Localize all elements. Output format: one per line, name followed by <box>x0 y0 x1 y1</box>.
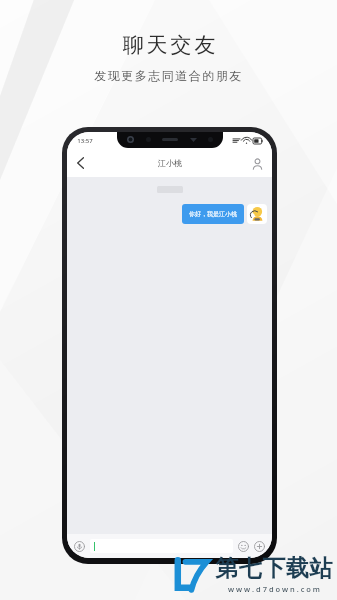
staticText: 发现更多志同道合的朋友 <box>94 68 243 83</box>
button[interactable]: Profile <box>245 151 269 175</box>
button[interactable]: More options <box>253 540 266 553</box>
button[interactable]: Avatar <box>247 204 267 224</box>
button[interactable] <box>90 539 233 553</box>
staticText: 第七下载站 <box>215 554 333 583</box>
staticText: w w w . d 7 d o w n . c o m <box>228 584 320 594</box>
button[interactable]: Emoji <box>237 540 250 553</box>
button[interactable]: Voice input <box>73 540 86 553</box>
button[interactable]: Back <box>67 150 93 176</box>
staticText: 你好，我是江小桃 <box>189 210 237 218</box>
staticText: 江小桃 <box>158 158 182 168</box>
staticText: 聊天交友 <box>121 32 217 58</box>
staticText: 13:57 <box>77 137 93 145</box>
button[interactable]: 你好，我是江小桃 <box>182 204 244 224</box>
